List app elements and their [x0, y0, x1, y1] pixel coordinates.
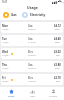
staticText: Wed — [2, 50, 8, 54]
staticText: £2.70 — [54, 76, 61, 80]
staticText: 38 kWh — [28, 28, 36, 31]
staticText: 19 kWh — [28, 80, 36, 83]
button[interactable]: Tue — [1, 35, 63, 46]
button[interactable]: Home — [0, 87, 22, 100]
staticText: due — [56, 80, 60, 83]
staticText: Account — [49, 95, 58, 98]
staticText: Mon — [2, 24, 8, 28]
button[interactable]: Mon — [1, 22, 63, 33]
staticText: 12 Jun — [2, 28, 9, 31]
staticText: £3.88 — [54, 63, 61, 67]
staticText: 35 kWh — [28, 67, 36, 70]
staticText: Stats — [30, 95, 36, 98]
staticText: 41 kWh — [28, 41, 36, 44]
staticText: paid — [55, 67, 60, 70]
staticText: Fri — [2, 76, 6, 80]
button[interactable]: Thu — [1, 61, 63, 72]
staticText: paid — [55, 41, 60, 44]
staticText: £4.12 — [54, 24, 61, 28]
staticText: paid — [55, 28, 60, 31]
staticText: £4.40 — [54, 37, 61, 41]
button[interactable]: Account — [43, 87, 64, 100]
button[interactable]: Wed — [1, 48, 63, 59]
staticText: due — [56, 54, 60, 57]
staticText: 16 Jun — [2, 80, 9, 83]
staticText: Electricity — [30, 13, 46, 17]
staticText: Tue — [2, 37, 7, 41]
staticText: £3.02 — [54, 50, 61, 54]
staticText: Home — [8, 95, 15, 98]
staticText: Elec — [28, 50, 33, 54]
button[interactable]: Electricity — [22, 12, 46, 18]
staticText: 9:41 — [2, 0, 8, 4]
staticText: Gas — [28, 37, 33, 41]
staticText: Gas — [28, 63, 33, 67]
staticText: Usage — [27, 5, 38, 10]
staticText: 13 Jun — [2, 41, 9, 44]
button[interactable]: Stats — [22, 87, 43, 100]
staticText: Thu — [2, 63, 8, 67]
staticText: Gas — [11, 13, 17, 17]
staticText: Gas — [28, 24, 33, 28]
button[interactable]: Fri — [1, 74, 63, 85]
button[interactable]: Gas — [3, 12, 17, 18]
staticText: Elec — [28, 76, 33, 80]
staticText: 15 Jun — [2, 67, 9, 70]
staticText: 14 Jun — [2, 54, 9, 57]
staticText: 22 kWh — [28, 54, 36, 57]
